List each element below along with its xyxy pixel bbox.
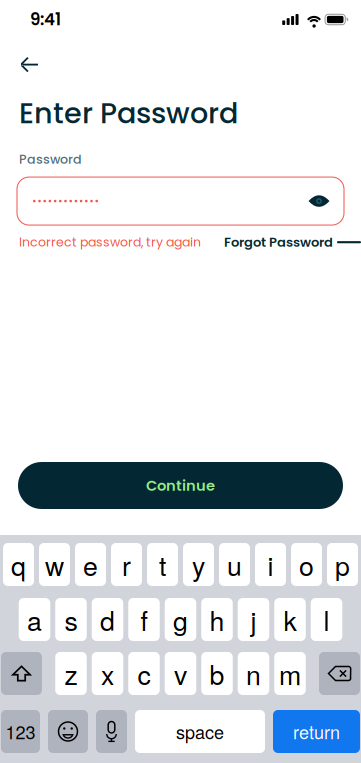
staticText: y <box>192 545 205 584</box>
button[interactable]: p <box>327 543 358 586</box>
button[interactable]: Shift <box>1 652 42 695</box>
button[interactable]: k <box>274 598 306 641</box>
button[interactable]: i <box>255 543 286 586</box>
staticText: a <box>27 600 42 639</box>
button[interactable]: y <box>183 543 214 586</box>
staticText: Password <box>19 150 82 168</box>
button[interactable]: z <box>55 652 87 695</box>
staticText: Incorrect password, try again <box>19 233 201 251</box>
button[interactable]: b <box>201 652 233 695</box>
button[interactable]: x <box>92 652 123 695</box>
button[interactable]: d <box>92 598 123 641</box>
staticText: 9:41 <box>30 8 61 31</box>
staticText: k <box>283 600 296 639</box>
button[interactable]: v <box>165 652 196 695</box>
button[interactable]: j <box>238 598 269 641</box>
button[interactable]: Show password <box>308 194 330 208</box>
button[interactable]: a <box>19 598 50 641</box>
button[interactable]: return <box>273 710 360 753</box>
button[interactable]: t <box>147 543 178 586</box>
button[interactable]: 123 <box>1 710 40 753</box>
staticText: b <box>209 654 224 693</box>
staticText: 123 <box>5 719 35 744</box>
button[interactable]: n <box>238 652 269 695</box>
staticText: v <box>174 654 187 693</box>
staticText: Continue <box>146 475 215 496</box>
button[interactable]: m <box>274 652 306 695</box>
staticText: l <box>323 600 329 639</box>
button[interactable]: s <box>55 598 87 641</box>
staticText: return <box>293 719 340 744</box>
button[interactable]: h <box>201 598 233 641</box>
staticText: i <box>267 545 273 584</box>
staticText: p <box>335 545 350 584</box>
button[interactable]: l <box>311 598 342 641</box>
staticText: h <box>209 600 224 639</box>
staticText: c <box>137 654 150 693</box>
staticText: t <box>159 545 166 584</box>
staticText: z <box>64 654 77 693</box>
button[interactable]: r <box>111 543 142 586</box>
staticText: n <box>246 654 261 693</box>
button[interactable]: Forgot Password <box>224 233 361 251</box>
staticText: Forgot Password <box>224 233 333 251</box>
button[interactable]: Continue <box>18 462 343 509</box>
button[interactable]: o <box>291 543 322 586</box>
staticText: Enter Password <box>19 93 238 133</box>
staticText: m <box>279 654 301 693</box>
button[interactable]: q <box>3 543 34 586</box>
button[interactable]: g <box>165 598 196 641</box>
staticText: f <box>140 600 147 639</box>
button[interactable]: space <box>135 710 265 753</box>
button[interactable]: Dictate <box>96 710 127 753</box>
button[interactable]: Delete <box>319 652 360 695</box>
staticText: w <box>45 545 64 584</box>
staticText: space <box>176 719 224 744</box>
button[interactable]: w <box>39 543 70 586</box>
staticText: d <box>100 600 115 639</box>
button[interactable]: Back <box>0 39 53 82</box>
button[interactable]: Emoji <box>48 710 88 753</box>
button[interactable]: u <box>219 543 250 586</box>
staticText: x <box>101 654 114 693</box>
staticText: j <box>250 600 256 639</box>
staticText: o <box>299 545 314 584</box>
button[interactable]: e <box>75 543 106 586</box>
staticText: g <box>173 600 188 639</box>
staticText: e <box>83 545 98 584</box>
button[interactable]: f <box>128 598 160 641</box>
staticText: s <box>64 600 77 639</box>
staticText: r <box>122 545 131 584</box>
button[interactable]: c <box>128 652 160 695</box>
staticText: u <box>227 545 242 584</box>
staticText: q <box>11 545 26 584</box>
